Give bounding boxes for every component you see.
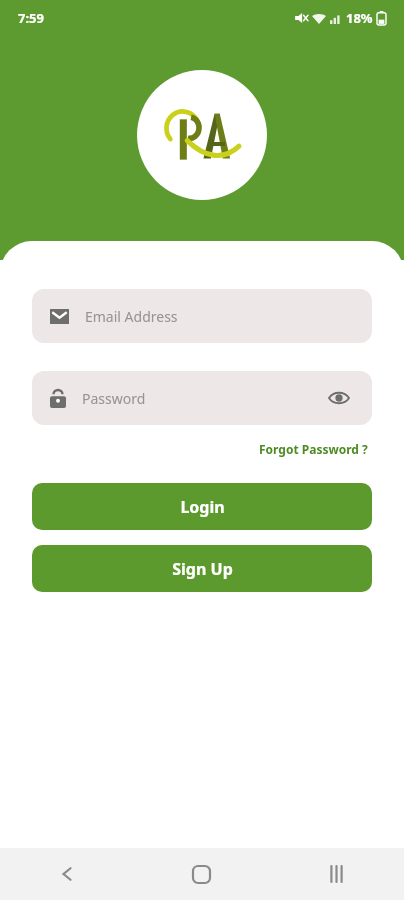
button[interactable]: Password (32, 371, 372, 425)
button[interactable]: Login (32, 483, 372, 530)
staticText: Forgot Password ? (259, 441, 368, 457)
staticText: Login (180, 496, 225, 518)
staticText: 18% (346, 9, 373, 27)
button[interactable]: Sign Up (32, 545, 372, 592)
button[interactable]: Back (0, 848, 134, 900)
button[interactable]: Forgot Password ? (255, 437, 372, 461)
staticText: Password (82, 389, 324, 408)
staticText: Email Address (85, 307, 354, 326)
button[interactable]: Recent apps (269, 848, 404, 900)
button[interactable]: Home (134, 848, 269, 900)
staticText: 7:59 (18, 9, 44, 27)
staticText: Sign Up (172, 558, 233, 580)
button[interactable]: Show password (324, 383, 354, 413)
button[interactable]: Email Address (32, 289, 372, 343)
